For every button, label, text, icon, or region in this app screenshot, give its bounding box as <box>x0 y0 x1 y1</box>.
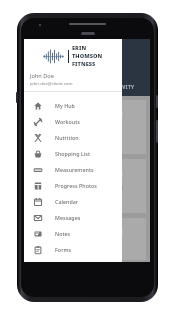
staticText: My Hub <box>55 102 75 109</box>
button[interactable]: Messages <box>24 209 122 225</box>
staticText: Workouts <box>55 118 80 125</box>
staticText: THOMSON <box>72 52 103 60</box>
button[interactable]: Measurements <box>24 161 122 177</box>
staticText: Forms <box>55 246 72 253</box>
button[interactable]: Notes <box>24 225 122 241</box>
button[interactable]: John Doe <box>24 72 122 91</box>
staticText: ERIN <box>72 44 87 52</box>
button[interactable]: Calendar <box>24 193 122 209</box>
button[interactable]: Erin Thomson Fitness <box>24 39 122 72</box>
staticText: Measurements <box>55 166 94 173</box>
staticText: ENTS <box>110 183 124 190</box>
button[interactable]: Progress Photos <box>24 177 122 193</box>
staticText: Notes <box>55 230 71 237</box>
staticText: Calendar <box>55 198 79 205</box>
staticText: Shopping List <box>55 150 90 157</box>
staticText: John Doe <box>30 72 54 80</box>
button[interactable]: Shopping List <box>24 145 122 161</box>
button[interactable]: Nutrition <box>24 129 122 145</box>
staticText: john.doe@client.com <box>30 80 73 86</box>
button[interactable]: My Hub <box>24 97 122 113</box>
staticText: Progress Photos <box>55 182 97 189</box>
button[interactable]: Forms <box>24 241 122 257</box>
staticText: ACTIVITY <box>110 84 135 91</box>
staticText: Messages <box>55 214 81 221</box>
staticText: FITNESS <box>72 60 96 68</box>
staticText: Nutrition <box>55 134 79 141</box>
button[interactable]: Workouts <box>24 113 122 129</box>
